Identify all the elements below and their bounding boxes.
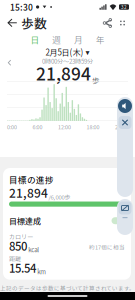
staticText: 歩	[92, 75, 99, 85]
staticText: 約17個に相当	[89, 243, 125, 251]
staticText: 21,894	[9, 184, 48, 201]
button[interactable]: More options	[115, 14, 130, 32]
button[interactable]: 月	[67, 32, 89, 47]
button[interactable]: 日	[24, 32, 46, 47]
staticText: 12:00	[58, 123, 71, 131]
staticText: 0時00分〜23時59分	[42, 57, 93, 65]
button[interactable]: 年	[89, 32, 111, 47]
button[interactable]: 目標達成	[111, 216, 125, 225]
staticText: /6,000歩	[49, 193, 71, 201]
staticText: 15.54	[9, 259, 36, 276]
staticText: 32	[121, 4, 127, 10]
staticText: 年	[96, 33, 105, 46]
staticText: 上記のデータは歩数に基づいて計算されています。	[0, 284, 135, 292]
staticText: 目標の進捗	[9, 173, 54, 186]
staticText: 2月5日(木) ▾	[45, 46, 89, 58]
button[interactable]: Collapse	[118, 115, 132, 129]
staticText: kcal	[28, 245, 39, 254]
button[interactable]: Back	[4, 14, 21, 32]
staticText: 18:00	[86, 123, 99, 131]
staticText: 15:30	[10, 1, 33, 13]
button[interactable]: Stop	[118, 201, 132, 215]
staticText: 24:00	[115, 123, 128, 131]
staticText: 距離	[9, 254, 21, 263]
staticText: 850	[9, 237, 27, 254]
staticText: 歩数	[21, 14, 47, 32]
button[interactable]: Share	[100, 14, 115, 32]
staticText: 0:00	[7, 123, 17, 131]
staticText: km	[37, 267, 46, 276]
staticText: 週	[52, 33, 61, 46]
staticText: 日	[30, 33, 39, 46]
button[interactable]: Previous day	[4, 57, 16, 69]
staticText: 月	[74, 33, 83, 46]
button[interactable]: Read aloud	[117, 98, 132, 113]
staticText: 目標達成	[9, 215, 41, 226]
button[interactable]: 週	[46, 32, 68, 47]
staticText: カロリー	[9, 232, 33, 241]
staticText: 21,894	[36, 60, 91, 86]
staticText: 6:00	[32, 123, 42, 131]
